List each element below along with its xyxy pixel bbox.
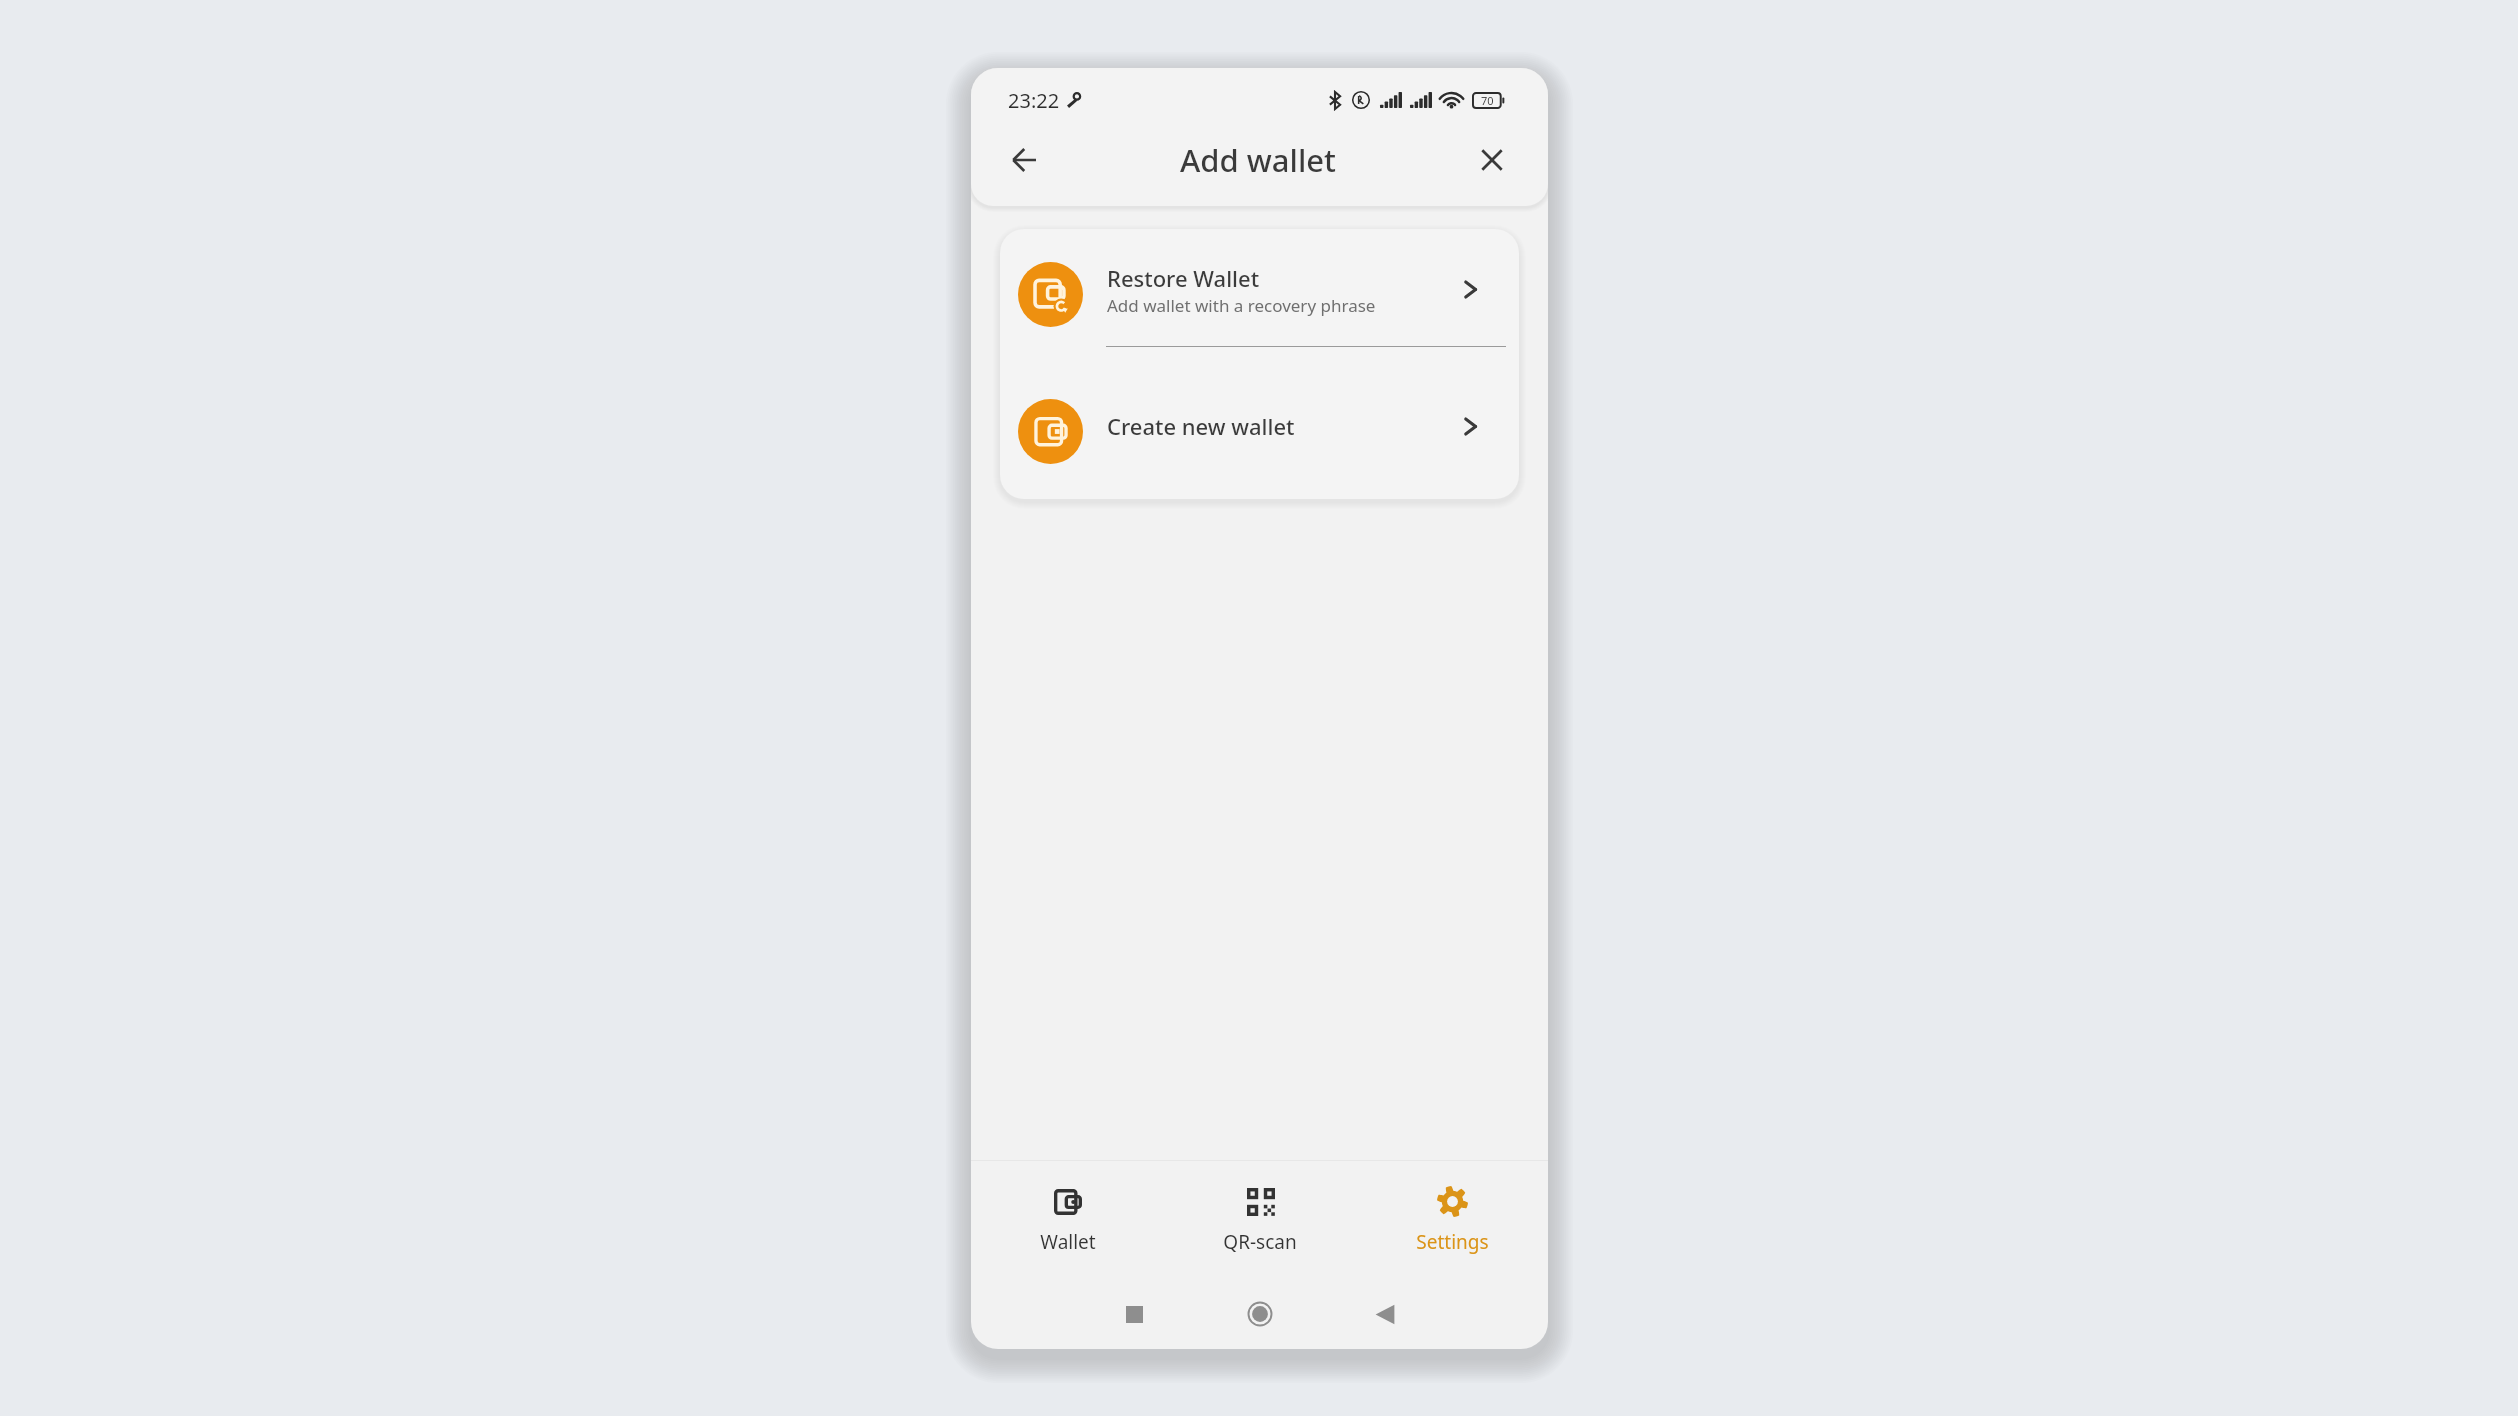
button[interactable]: Close	[1466, 134, 1518, 186]
button[interactable]: Settings	[1356, 1161, 1548, 1273]
button[interactable]: Recent apps	[1101, 1281, 1167, 1347]
button[interactable]: QR-scan	[1164, 1161, 1356, 1273]
button[interactable]: Home	[1227, 1281, 1293, 1347]
button[interactable]: Create new wallet	[1000, 347, 1519, 499]
button[interactable]: Back	[1352, 1281, 1418, 1347]
staticText: Add wallet	[1180, 139, 1336, 181]
staticText: Wallet	[1040, 1229, 1096, 1255]
staticText: 70	[1481, 93, 1494, 108]
staticText: Settings	[1416, 1229, 1489, 1255]
button[interactable]: Back	[998, 134, 1050, 186]
staticText: Add wallet with a recovery phrase	[1107, 294, 1376, 317]
button[interactable]: Restore Wallet	[1000, 229, 1519, 346]
staticText: Restore Wallet	[1107, 263, 1260, 293]
button[interactable]: Wallet	[971, 1161, 1164, 1273]
staticText: Create new wallet	[1107, 411, 1462, 441]
staticText: QR-scan	[1223, 1229, 1297, 1255]
staticText: 23:22	[1008, 87, 1060, 114]
